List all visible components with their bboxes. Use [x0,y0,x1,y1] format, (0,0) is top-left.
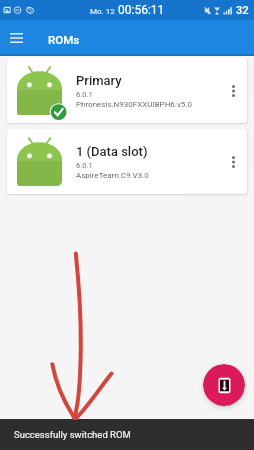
staticText: Primary [76,73,122,88]
button[interactable]: Successfully switched ROM [0,419,254,450]
staticText: AspireTeam.C9.V3.0 [76,171,149,180]
staticText: Phronesis.N930FXXUIBPH6.v5.0 [76,100,192,109]
button[interactable]: More options [220,129,247,194]
button[interactable]: More options [220,58,247,123]
staticText: 32 [236,4,249,17]
staticText: Successfully switched ROM [14,429,131,440]
button[interactable]: Open navigation menu [2,24,30,52]
button[interactable]: Flash ROM [203,364,245,406]
staticText: 6.0.1 [76,90,93,99]
button[interactable]: 1 (Data slot) [7,129,247,194]
staticText: 00:56:11 [118,3,165,17]
staticText: 6.0.1 [76,161,93,170]
staticText: ROMs [48,33,80,46]
button[interactable]: Primary [7,58,247,123]
staticText: 1 (Data slot) [76,144,148,159]
staticText: Mo. 12 [90,7,115,16]
